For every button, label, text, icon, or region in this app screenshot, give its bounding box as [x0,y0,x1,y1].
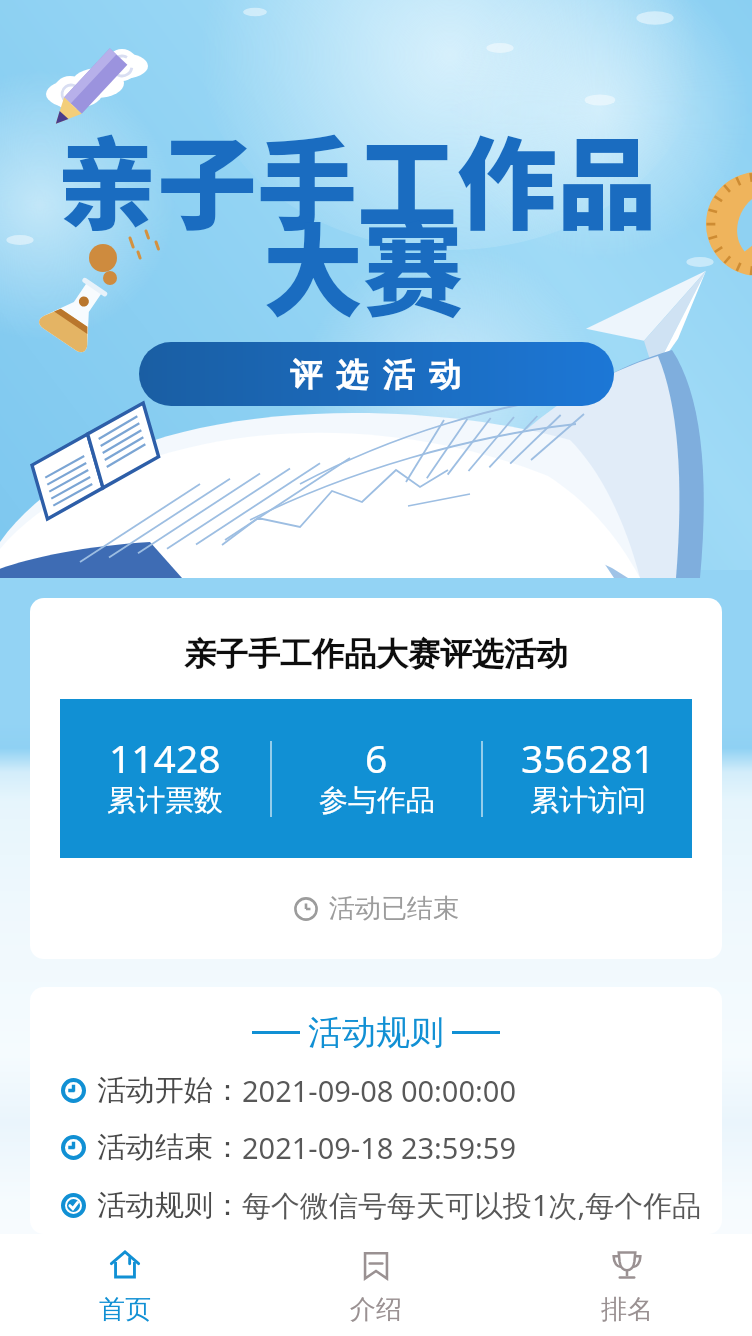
staticText: 累计访问 [530,782,646,819]
staticText: 每个微信号每天可以投1次,每个作品 [242,1185,702,1225]
button[interactable]: 评 选 活 动 [139,342,614,406]
staticText: 亲子手工作品大赛评选活动 [30,634,722,674]
staticText: 6 [365,731,388,784]
staticText: 首页 [99,1293,151,1326]
staticText: 介绍 [350,1293,402,1326]
staticText: 活动规则： [97,1187,242,1224]
button[interactable]: 排名 [501,1234,752,1336]
staticText: 亲子手工作品 [57,105,657,250]
staticText: 活动开始： [97,1072,242,1109]
staticText: 评 选 活 动 [290,352,464,396]
staticText: 活动结束： [97,1129,242,1166]
staticText: 排名 [601,1293,653,1326]
staticText: 活动规则 [308,1011,444,1054]
staticText: 2021-09-18 23:59:59 [242,1128,516,1167]
staticText: 参与作品 [319,782,435,819]
staticText: 11428 [109,731,221,784]
staticText: 累计票数 [107,782,223,819]
staticText: 大赛 [263,192,463,337]
staticText: 活动已结束 [329,892,459,925]
staticText: 356281 [521,731,655,784]
staticText: 2021-09-08 00:00:00 [242,1071,516,1110]
button[interactable]: 介绍 [250,1234,501,1336]
button[interactable]: 首页 [0,1234,250,1336]
